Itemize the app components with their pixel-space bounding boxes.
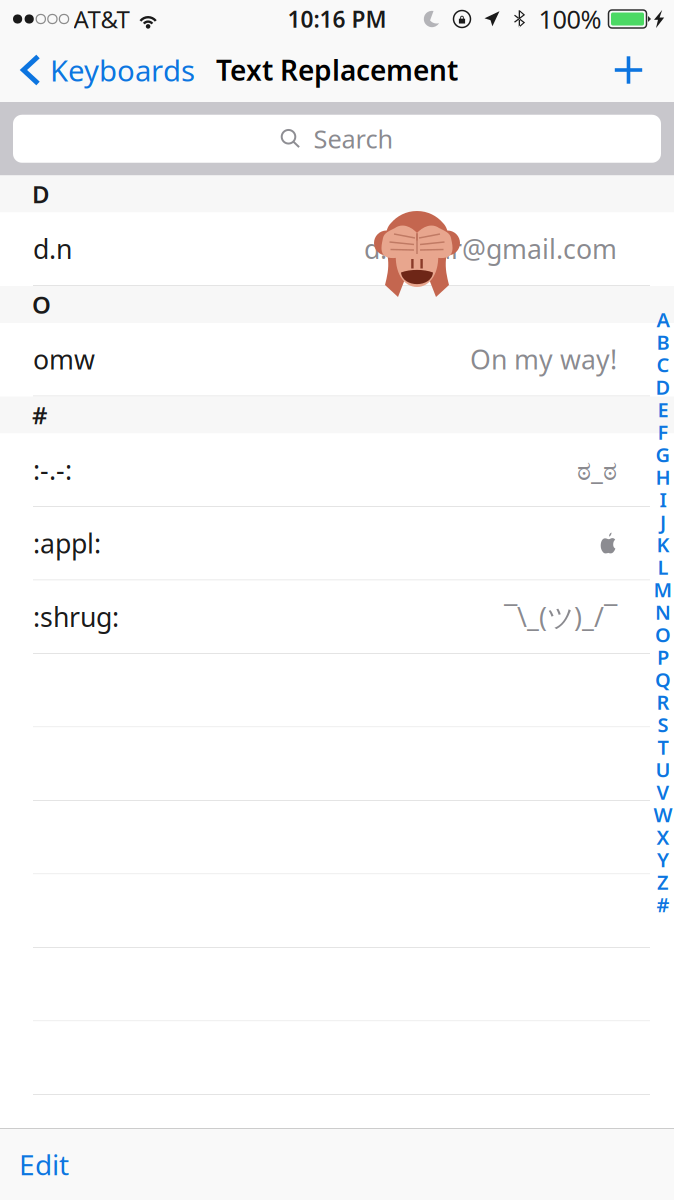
staticText: 10:16 PM <box>287 4 386 34</box>
staticText: H <box>655 464 670 490</box>
staticText: J <box>660 509 666 535</box>
staticText: Y <box>657 846 669 873</box>
staticText: B <box>656 329 669 355</box>
staticText: X <box>656 824 669 850</box>
staticText: ¯\_(ツ)_/¯ <box>504 599 617 634</box>
staticText: 100% <box>538 2 601 36</box>
button[interactable]: :shrug: <box>0 580 674 654</box>
staticText: :shrug: <box>33 599 119 634</box>
staticText: P <box>657 644 669 670</box>
button[interactable]: omw <box>0 323 674 396</box>
staticText: C <box>656 351 669 378</box>
button[interactable]: Add shortcut <box>592 38 674 102</box>
button[interactable]: d.n <box>0 212 674 286</box>
staticText: D <box>32 178 50 210</box>
staticText: T <box>657 734 668 760</box>
button[interactable]: :-.-: <box>0 433 674 507</box>
staticText: # <box>656 891 669 918</box>
staticText: E <box>657 396 668 423</box>
staticText: # <box>32 399 48 431</box>
staticText: N <box>655 599 671 625</box>
button[interactable]: Section index <box>652 312 674 912</box>
staticText: On my way! <box>470 341 617 377</box>
staticText: ಠ_ಠ <box>577 452 617 487</box>
staticText: O <box>655 621 671 648</box>
staticText: Search <box>313 122 393 155</box>
button[interactable]: Edit <box>0 1129 674 1200</box>
staticText: U <box>655 756 670 783</box>
button[interactable]: Search <box>0 102 674 175</box>
staticText: M <box>653 576 672 603</box>
staticText: A <box>656 306 669 333</box>
staticText: F <box>657 419 668 445</box>
button[interactable]: Keyboards <box>0 38 205 102</box>
staticText: Edit <box>19 1146 69 1183</box>
staticText: R <box>656 689 669 715</box>
staticText: d.n <box>33 231 72 266</box>
staticText: Q <box>655 666 671 693</box>
staticText: W <box>653 801 672 828</box>
staticText: omw <box>33 341 95 377</box>
staticText: S <box>657 711 668 738</box>
staticText: O <box>32 289 51 320</box>
staticText: Keyboards <box>50 50 195 89</box>
staticText: D <box>655 374 670 400</box>
staticText: :-.-: <box>33 452 72 487</box>
staticText: G <box>655 441 670 468</box>
staticText: I <box>659 486 666 513</box>
staticText: Z <box>657 869 669 895</box>
staticText: :appl: <box>33 525 101 561</box>
staticText: d‥‥‥kar@gmail.com <box>364 231 617 266</box>
staticText: AT&T <box>74 3 130 35</box>
staticText: V <box>656 779 669 805</box>
staticText: K <box>656 531 669 558</box>
staticText: Text Replacement <box>216 51 458 89</box>
staticText: L <box>657 554 668 580</box>
button[interactable]: :appl: <box>0 507 674 580</box>
